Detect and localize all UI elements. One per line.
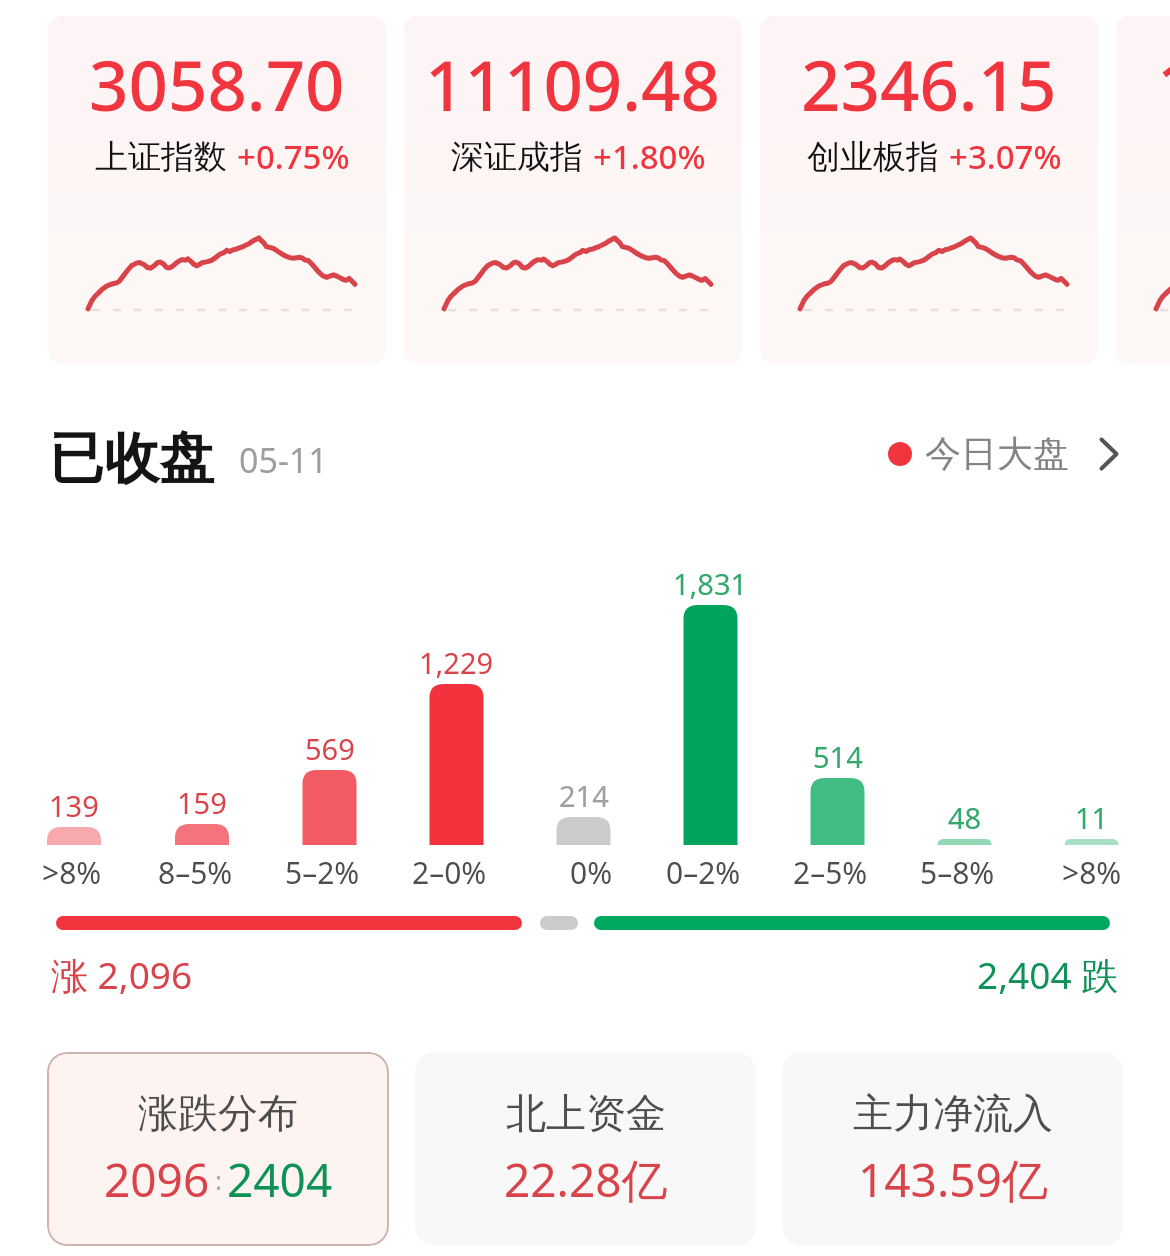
button[interactable]: 514 [774, 545, 901, 890]
button[interactable]: 48 [901, 545, 1028, 890]
staticText: 上证指数 [95, 136, 227, 178]
button[interactable]: 159 [138, 545, 266, 890]
staticText: 2096 [104, 1148, 210, 1211]
staticText: 05-11 [239, 437, 328, 483]
staticText: 569 [305, 729, 355, 768]
button[interactable]: 北上资金 [415, 1052, 756, 1246]
button[interactable]: 3058.70 [48, 16, 386, 364]
staticText: 11 [1075, 798, 1109, 837]
button[interactable]: 今日大盘 [888, 431, 1119, 476]
staticText: 214 [559, 776, 609, 815]
button[interactable]: 139 [10, 545, 138, 890]
button[interactable]: 214 [520, 545, 647, 890]
staticText: 2404 [227, 1148, 333, 1211]
staticText: 主力净流入 [853, 1088, 1053, 1138]
staticText: 3058.70 [89, 37, 345, 131]
staticText: 2–5% [793, 852, 868, 893]
staticText: >8% [42, 852, 102, 893]
staticText: >8% [1062, 852, 1122, 893]
staticText: 1015.23 [1157, 37, 1170, 131]
button[interactable]: 11109.48 [404, 16, 742, 364]
staticText: 514 [813, 737, 863, 776]
staticText: 8–5% [158, 852, 233, 893]
button[interactable]: 1015.23 [1116, 16, 1170, 364]
button[interactable]: 主力净流入 [782, 1052, 1123, 1246]
staticText: 159 [177, 783, 227, 822]
staticText: 涨跌分布 [138, 1088, 298, 1138]
staticText: +1.80% [593, 134, 706, 179]
staticText: 11109.48 [425, 37, 721, 131]
button[interactable]: 2346.15 [760, 16, 1098, 364]
staticText: 2346.15 [801, 37, 1057, 131]
button[interactable]: 1,229 [393, 545, 520, 890]
staticText: 1,831 [673, 564, 748, 603]
button[interactable]: 11 [1028, 545, 1155, 890]
staticText: : [215, 1162, 222, 1197]
button[interactable]: 涨跌分布 [47, 1052, 389, 1246]
staticText: 22.28亿 [504, 1148, 668, 1211]
staticText: 北上资金 [506, 1088, 666, 1138]
staticText: 创业板指 [807, 136, 939, 178]
staticText: 5–8% [920, 852, 995, 893]
staticText: 1,229 [419, 643, 494, 682]
button[interactable]: 1,831 [647, 545, 774, 890]
staticText: 143.59亿 [858, 1148, 1048, 1211]
staticText: 涨 2,096 [51, 949, 193, 1000]
staticText: 139 [49, 786, 99, 825]
staticText: 48 [948, 798, 982, 837]
staticText: 2,404 跌 [977, 949, 1119, 1000]
staticText: 0% [570, 852, 613, 893]
staticText: 5–2% [285, 852, 360, 893]
staticText: 0–2% [666, 852, 741, 893]
staticText: 已收盘 [49, 424, 214, 493]
staticText: 2–0% [412, 852, 487, 893]
staticText: +0.75% [237, 134, 350, 179]
button[interactable]: 569 [266, 545, 393, 890]
staticText: +3.07% [949, 134, 1062, 179]
staticText: 今日大盘 [925, 431, 1069, 476]
staticText: 深证成指 [451, 136, 583, 178]
other: Open market overview [1099, 437, 1119, 471]
